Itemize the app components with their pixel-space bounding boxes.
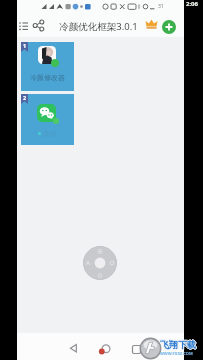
button[interactable] (18, 20, 30, 32)
button[interactable] (32, 19, 45, 32)
button[interactable] (97, 341, 115, 357)
staticText: 2:06 (186, 0, 198, 8)
staticText: 1 (23, 42, 27, 49)
button[interactable] (162, 20, 176, 34)
staticText: 冷颜优化框架3.0.1 (59, 20, 138, 33)
button[interactable] (83, 246, 117, 280)
staticText: WWW.FXXZ.COM (160, 351, 193, 356)
staticText: 飞翔下载 (160, 338, 196, 349)
button[interactable] (66, 340, 82, 356)
staticText: 31 (158, 3, 164, 10)
staticText: 飞翔下载 (160, 339, 196, 350)
staticText: 飞翔下载 (161, 339, 197, 350)
staticText: 微信 (43, 129, 57, 138)
button[interactable] (128, 341, 144, 357)
staticText: 飞翔下载 (160, 340, 196, 351)
staticText: 冷颜修改器 (30, 73, 65, 82)
staticText: 2 (23, 94, 27, 101)
button[interactable]: 2 (21, 94, 74, 145)
staticText: 飞翔下载 (159, 339, 195, 350)
button[interactable]: 1 (21, 42, 74, 91)
